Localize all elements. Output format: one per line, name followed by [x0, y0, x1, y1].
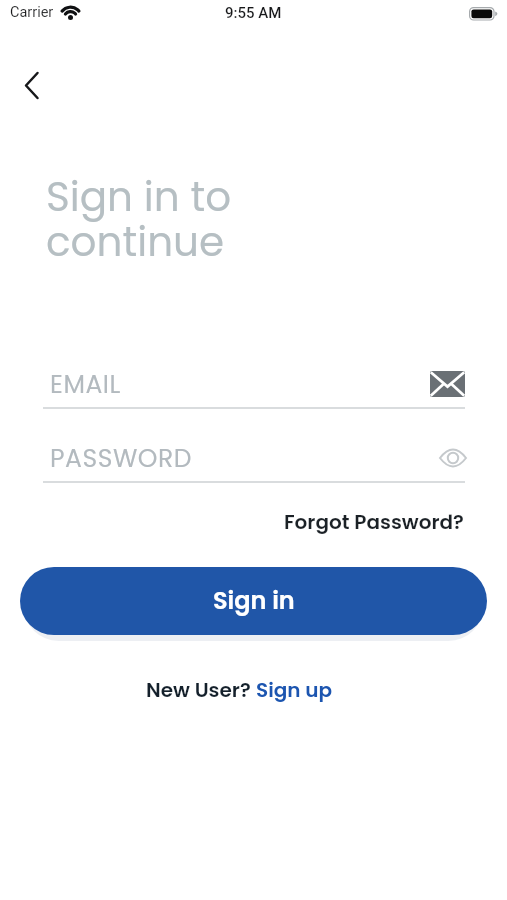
staticText: Sign in — [213, 584, 295, 618]
button[interactable]: Sign up — [256, 676, 333, 704]
button[interactable]: Sign in — [20, 567, 487, 635]
staticText: EMAIL — [50, 367, 121, 402]
staticText: 9:55 AM — [225, 4, 282, 22]
staticText: Sign up — [256, 676, 333, 704]
staticText: Forgot Password? — [284, 508, 464, 536]
button[interactable]: Forgot Password? — [284, 508, 464, 536]
staticText: New User? — [146, 676, 256, 704]
button[interactable]: PASSWORD — [43, 435, 465, 483]
button[interactable]: EMAIL — [43, 361, 465, 409]
staticText: Sign in to continue — [46, 168, 232, 270]
staticText: Carrier — [10, 4, 54, 21]
button[interactable] — [10, 63, 54, 107]
staticText: PASSWORD — [50, 441, 193, 476]
